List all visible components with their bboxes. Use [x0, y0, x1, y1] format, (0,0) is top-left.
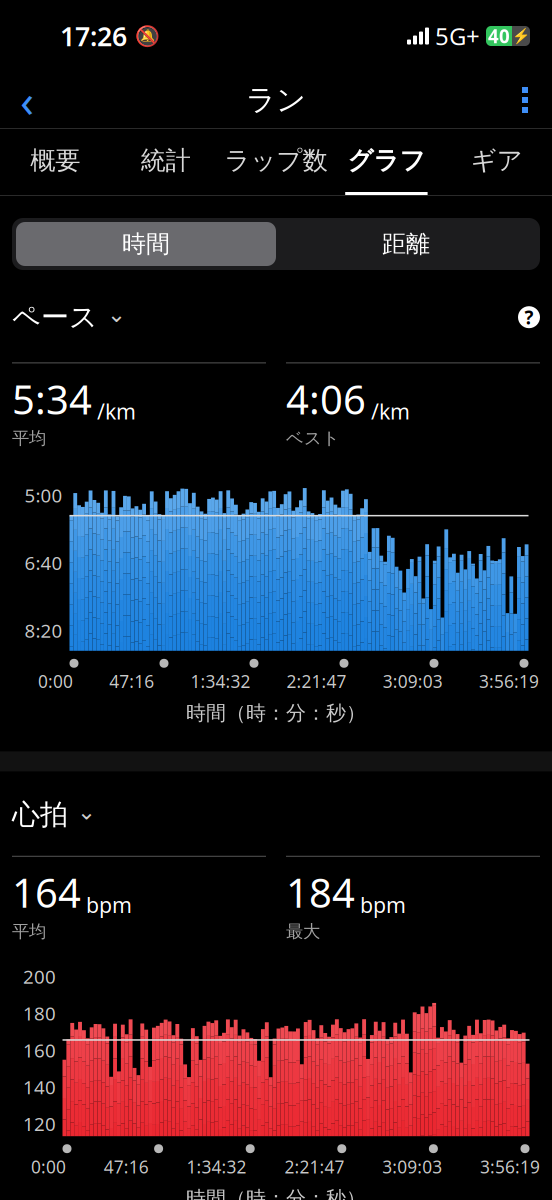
staticText: 164	[12, 866, 81, 919]
staticText: 0:00	[38, 670, 73, 693]
staticText: ?	[524, 305, 533, 330]
staticText: 40	[488, 24, 510, 48]
staticText: 心拍	[12, 797, 68, 832]
button[interactable]: ペース	[12, 300, 126, 334]
button[interactable]: その他のオプション	[498, 74, 552, 126]
staticText: 17:26	[60, 18, 127, 54]
button[interactable]: 統計	[110, 129, 221, 195]
staticText: 0:00	[31, 1155, 66, 1178]
staticText: 47:16	[104, 1155, 149, 1178]
staticText: 3:09:03	[383, 670, 443, 693]
staticText: 距離	[382, 229, 430, 259]
staticText: 3:09:03	[382, 1155, 442, 1178]
staticText: ⚡	[512, 28, 530, 44]
staticText: 160	[23, 1038, 56, 1063]
staticText: 3:56:19	[480, 1155, 540, 1178]
button[interactable]: ラップ数	[221, 129, 331, 195]
staticText: 47:16	[109, 670, 154, 693]
staticText: /km	[371, 397, 410, 425]
staticText: 🔕	[135, 25, 160, 47]
staticText: 200	[23, 964, 56, 989]
staticText: 5G+	[435, 20, 480, 52]
staticText: 2:21:47	[284, 1155, 344, 1178]
staticText: bpm	[86, 891, 132, 919]
staticText: 184	[286, 866, 355, 919]
staticText: 3:56:19	[479, 670, 539, 693]
staticText: 8:20	[24, 618, 62, 643]
staticText: 5:00	[24, 483, 62, 508]
staticText: 120	[23, 1111, 56, 1136]
staticText: 5:34	[12, 372, 92, 425]
staticText: 時間（時：分：秒）	[186, 701, 366, 725]
staticText: 1:34:32	[190, 670, 250, 693]
staticText: 統計	[141, 145, 191, 176]
staticText: 平均	[12, 921, 46, 942]
staticText: ラップ数	[224, 145, 327, 176]
staticText: ベスト	[286, 427, 340, 449]
button[interactable]: 戻る	[0, 74, 54, 126]
button[interactable]: 概要	[0, 129, 110, 195]
button[interactable]: 時間	[16, 222, 276, 266]
button[interactable]: 距離	[276, 222, 536, 266]
staticText: /km	[97, 397, 136, 425]
staticText: グラフ	[347, 145, 425, 176]
staticText: 平均	[12, 427, 46, 449]
staticText: ‹	[20, 70, 34, 130]
staticText: 1:34:32	[187, 1155, 247, 1178]
staticText: 6:40	[24, 550, 62, 575]
button[interactable]: ギア	[442, 129, 552, 195]
staticText: ⌄	[107, 301, 126, 327]
button[interactable]: グラフ	[331, 129, 442, 195]
button[interactable]: ヘルプ	[518, 305, 540, 330]
staticText: 2:21:47	[287, 670, 347, 693]
staticText: ギア	[471, 145, 523, 176]
staticText: 時間（時：分：秒）	[186, 1186, 366, 1200]
staticText: ⌄	[77, 799, 96, 824]
staticText: 概要	[30, 145, 80, 176]
staticText: ペース	[12, 300, 98, 334]
staticText: 180	[23, 1001, 56, 1026]
staticText: 最大	[286, 921, 320, 942]
staticText: ラン	[246, 82, 306, 118]
staticText: bpm	[360, 891, 406, 919]
button[interactable]: 心拍	[12, 797, 96, 832]
staticText: 時間	[122, 229, 170, 259]
staticText: 4:06	[286, 372, 366, 425]
staticText: 140	[23, 1075, 56, 1099]
